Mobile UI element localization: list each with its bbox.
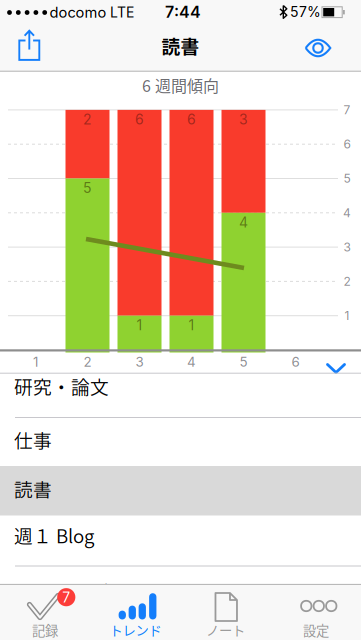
- staticText: 7: [62, 589, 70, 606]
- staticText: トレンド: [109, 620, 161, 640]
- staticText: 7: [343, 103, 350, 117]
- button[interactable]: [3, 23, 55, 67]
- button[interactable]: ノート: [180, 555, 271, 640]
- staticText: 3: [343, 240, 350, 254]
- staticText: ノート: [206, 620, 245, 640]
- staticText: 設定: [303, 620, 329, 640]
- staticText: 読書: [14, 475, 52, 502]
- staticText: docomo: [49, 4, 106, 21]
- button[interactable]: 7: [0, 555, 90, 640]
- staticText: ランニング: [14, 577, 109, 604]
- staticText: 週１ Blog: [14, 521, 94, 548]
- staticText: 2: [83, 354, 91, 370]
- staticText: 7:44: [165, 2, 201, 22]
- button[interactable]: 研究・論文: [0, 364, 361, 408]
- button[interactable]: 設定: [271, 555, 361, 640]
- button[interactable]: 読書: [0, 464, 361, 513]
- staticText: 1: [136, 317, 142, 334]
- button[interactable]: [320, 354, 352, 382]
- staticText: 5: [239, 354, 247, 370]
- staticText: 57%: [290, 3, 321, 20]
- staticText: 仕事: [14, 426, 52, 453]
- staticText: 1: [344, 308, 349, 323]
- staticText: 研究・論文: [14, 372, 109, 399]
- button[interactable]: トレンド: [90, 555, 180, 640]
- staticText: 2: [343, 274, 350, 289]
- staticText: 6: [291, 354, 299, 370]
- staticText: 4: [187, 354, 196, 370]
- staticText: 1: [188, 317, 194, 334]
- staticText: 6 週間傾向: [142, 73, 219, 97]
- button[interactable]: ランニング: [0, 566, 361, 616]
- button[interactable]: 週１ Blog: [0, 510, 361, 560]
- staticText: 6: [135, 111, 144, 128]
- staticText: LTE: [110, 4, 134, 21]
- staticText: 6: [343, 137, 350, 151]
- staticText: 5: [83, 179, 92, 196]
- staticText: 記録: [32, 620, 58, 640]
- staticText: 4: [343, 205, 351, 220]
- button[interactable]: 仕事: [0, 415, 361, 464]
- staticText: 1: [33, 354, 38, 370]
- staticText: 読書: [161, 32, 199, 59]
- staticText: 3: [239, 111, 248, 128]
- staticText: 3: [135, 354, 143, 370]
- button[interactable]: [292, 26, 344, 70]
- staticText: 2: [83, 111, 92, 128]
- staticText: 5: [343, 171, 350, 186]
- staticText: 6: [187, 111, 196, 128]
- staticText: 4: [239, 214, 248, 231]
